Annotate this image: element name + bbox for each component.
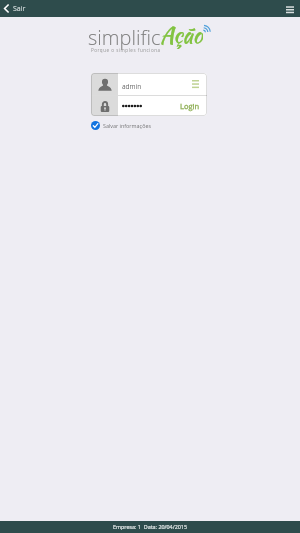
staticText: Login bbox=[180, 101, 200, 111]
staticText: Salvar informações bbox=[103, 122, 152, 129]
button[interactable]: Login bbox=[176, 96, 207, 116]
staticText: simplific bbox=[88, 24, 161, 51]
staticText: Empresa: 1 Data: 20/04/2015 bbox=[113, 523, 187, 530]
button[interactable]: User options bbox=[184, 73, 207, 95]
staticText: Porque o simples funciona bbox=[91, 47, 161, 53]
staticText: Sair bbox=[13, 4, 26, 14]
button[interactable]: Menu bbox=[280, 0, 300, 17]
button[interactable]: Sair bbox=[0, 0, 32, 17]
button[interactable]: Salvar informações bbox=[91, 121, 152, 130]
staticText: admin bbox=[122, 82, 142, 91]
staticText: Ação bbox=[160, 19, 203, 49]
